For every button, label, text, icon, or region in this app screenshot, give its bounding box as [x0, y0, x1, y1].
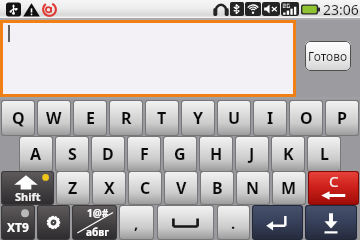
button[interactable]: Готово [305, 41, 351, 71]
staticText: F [140, 143, 149, 165]
button[interactable]: W [38, 101, 70, 135]
button[interactable]: S [56, 137, 88, 171]
button[interactable]: D [92, 137, 124, 171]
staticText: P [337, 107, 347, 129]
staticText: T [157, 107, 167, 129]
button[interactable]: Switch to symbols [73, 206, 116, 239]
staticText: S [68, 143, 77, 165]
staticText: 1@# [87, 206, 109, 220]
button[interactable]: XT9 [2, 206, 34, 239]
button[interactable]: N [237, 172, 269, 204]
staticText: Shift [15, 189, 41, 204]
button[interactable]: R [110, 101, 142, 135]
staticText: N [246, 177, 260, 199]
staticText: Y [193, 107, 204, 129]
button[interactable]: I [254, 101, 286, 135]
staticText: Z [68, 177, 78, 199]
staticText: X [104, 177, 115, 199]
staticText: D [102, 143, 114, 165]
staticText: V [176, 177, 187, 199]
button[interactable] [3, 23, 293, 94]
staticText: B [212, 177, 223, 199]
staticText: 23:06 [323, 0, 359, 18]
staticText: XT9 [7, 219, 29, 235]
button[interactable]: K [272, 137, 304, 171]
button[interactable]: Y [182, 101, 214, 135]
staticText: , [134, 213, 139, 233]
button[interactable]: Hide keyboard [306, 206, 356, 239]
button[interactable]: O [290, 101, 322, 135]
button[interactable]: J [236, 137, 268, 171]
button[interactable]: Z [57, 172, 89, 204]
staticText: абвг [86, 225, 109, 239]
button[interactable]: H [200, 137, 232, 171]
button[interactable]: Shift [2, 172, 53, 204]
staticText: A [30, 143, 42, 165]
button[interactable]: L [308, 137, 340, 171]
staticText: K [283, 143, 294, 165]
button[interactable]: M [273, 172, 305, 204]
button[interactable]: A [20, 137, 52, 171]
staticText: M [281, 177, 297, 199]
staticText: . [231, 213, 236, 233]
button[interactable]: Q [2, 101, 34, 135]
staticText: L [320, 143, 329, 165]
staticText: H [210, 143, 223, 165]
button[interactable]: X [93, 172, 125, 204]
staticText: R [121, 107, 132, 129]
staticText: U [228, 107, 241, 129]
button[interactable]: . [218, 206, 249, 239]
staticText: Готово [308, 48, 348, 64]
button[interactable]: P [326, 101, 358, 135]
button[interactable]: Settings [38, 206, 69, 239]
button[interactable]: B [201, 172, 233, 204]
staticText: G [174, 143, 186, 165]
staticText: E [86, 107, 95, 129]
staticText: W [46, 107, 62, 129]
button[interactable]: T [146, 101, 178, 135]
button[interactable]: Enter [253, 206, 302, 239]
button[interactable]: V [165, 172, 197, 204]
button[interactable]: Space [158, 206, 213, 239]
button[interactable]: C [129, 172, 161, 204]
button[interactable]: Backspace [309, 172, 358, 204]
staticText: I [267, 107, 274, 129]
button[interactable]: , [120, 206, 153, 239]
button[interactable]: F [128, 137, 160, 171]
button[interactable]: G [164, 137, 196, 171]
staticText: C [329, 172, 339, 191]
staticText: O [300, 107, 313, 129]
staticText: C [140, 177, 151, 199]
staticText: Q [12, 107, 25, 129]
staticText: J [249, 143, 255, 165]
button[interactable]: U [218, 101, 250, 135]
button[interactable]: E [74, 101, 106, 135]
